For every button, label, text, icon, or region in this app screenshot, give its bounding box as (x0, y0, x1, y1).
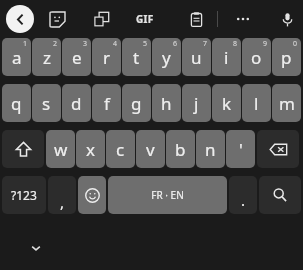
button[interactable]: . (229, 176, 257, 214)
staticText: j (194, 92, 199, 115)
button[interactable]: w (46, 130, 75, 168)
button[interactable]: k (212, 84, 241, 122)
button[interactable]: Backspace (257, 130, 299, 168)
button[interactable]: , (48, 176, 76, 214)
staticText: GIF (136, 12, 154, 26)
button[interactable]: l (242, 84, 271, 122)
button[interactable]: a (2, 38, 31, 76)
button[interactable]: n (196, 130, 225, 168)
button[interactable]: j (182, 84, 211, 122)
staticText: 7 (203, 39, 208, 49)
staticText: 2 (53, 39, 58, 49)
staticText: f (104, 92, 110, 115)
button[interactable]: y (152, 38, 181, 76)
button[interactable]: t (122, 38, 151, 76)
staticText: 4 (113, 39, 118, 49)
button[interactable]: q (2, 84, 31, 122)
staticText: l (254, 92, 259, 115)
button[interactable]: Voice input (277, 5, 297, 33)
staticText: e (72, 46, 82, 69)
staticText: h (161, 92, 172, 115)
staticText: r (103, 46, 111, 69)
staticText: c (116, 138, 125, 161)
button[interactable]: Stickers (47, 5, 67, 33)
staticText: b (175, 138, 186, 161)
staticText: t (133, 46, 140, 69)
staticText: g (131, 92, 142, 115)
staticText: 3 (83, 39, 88, 49)
staticText: p (281, 46, 292, 69)
staticText: x (86, 138, 95, 161)
staticText: 8 (233, 39, 238, 49)
button[interactable]: s (32, 84, 61, 122)
button[interactable]: z (32, 38, 61, 76)
button[interactable]: GIF (135, 5, 155, 33)
button[interactable]: ?123 (2, 176, 46, 214)
staticText: n (205, 138, 216, 161)
staticText: a (12, 46, 22, 69)
button[interactable]: Clipboard (186, 5, 206, 33)
staticText: FR · EN (151, 188, 184, 202)
staticText: ' (239, 138, 243, 161)
button[interactable]: h (152, 84, 181, 122)
staticText: q (11, 92, 22, 115)
button[interactable]: c (106, 130, 135, 168)
button[interactable]: ' (226, 130, 255, 168)
button[interactable]: p (272, 38, 301, 76)
button[interactable]: Shift (2, 130, 44, 168)
staticText: w (54, 138, 68, 161)
staticText: 1 (23, 39, 28, 49)
button[interactable]: More options (233, 5, 253, 33)
staticText: s (42, 92, 51, 115)
button[interactable]: Back (6, 5, 34, 33)
button[interactable]: m (272, 84, 301, 122)
button[interactable]: d (62, 84, 91, 122)
staticText: 0 (293, 39, 298, 49)
staticText: , (60, 192, 65, 212)
button[interactable]: f (92, 84, 121, 122)
button[interactable]: r (92, 38, 121, 76)
staticText: . (241, 190, 246, 210)
staticText: ?123 (11, 187, 37, 203)
button[interactable]: b (166, 130, 195, 168)
button[interactable]: Hide keyboard (22, 234, 50, 262)
button[interactable]: x (76, 130, 105, 168)
staticText: k (222, 92, 232, 115)
button[interactable]: i (212, 38, 241, 76)
staticText: 6 (173, 39, 178, 49)
button[interactable]: o (242, 38, 271, 76)
button[interactable]: g (122, 84, 151, 122)
staticText: u (191, 46, 202, 69)
button[interactable]: u (182, 38, 211, 76)
button[interactable]: Search (259, 176, 301, 214)
staticText: m (279, 92, 295, 115)
staticText: y (162, 46, 171, 69)
staticText: d (71, 92, 82, 115)
staticText: 5 (143, 39, 148, 49)
staticText: 9 (263, 39, 268, 49)
staticText: o (251, 46, 262, 69)
button[interactable]: v (136, 130, 165, 168)
button[interactable]: FR · EN (108, 176, 227, 214)
button[interactable]: Translate (91, 5, 111, 33)
button[interactable]: e (62, 38, 91, 76)
staticText: v (146, 138, 155, 161)
staticText: z (43, 46, 51, 69)
button[interactable]: Emoji (78, 176, 106, 214)
staticText: i (224, 46, 229, 69)
